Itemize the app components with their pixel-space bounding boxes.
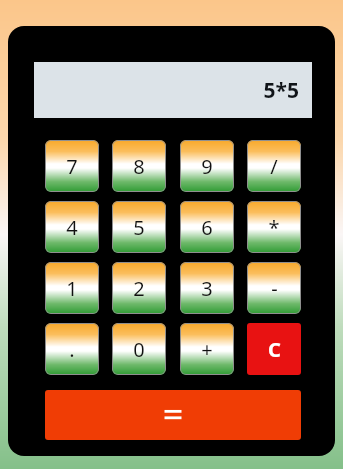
- staticText: 2: [133, 275, 145, 302]
- staticText: 9: [201, 153, 213, 180]
- button[interactable]: 3: [180, 262, 234, 314]
- button[interactable]: 8: [112, 140, 166, 192]
- button[interactable]: +: [180, 323, 234, 375]
- button[interactable]: *: [247, 201, 301, 253]
- staticText: 5: [133, 214, 145, 241]
- staticText: -: [271, 275, 278, 302]
- staticText: 8: [133, 153, 145, 180]
- button[interactable]: 4: [45, 201, 99, 253]
- button[interactable]: 2: [112, 262, 166, 314]
- staticText: 3: [201, 275, 213, 302]
- staticText: 4: [66, 214, 78, 241]
- staticText: 5*5: [263, 76, 299, 105]
- button[interactable]: C: [247, 323, 301, 375]
- button[interactable]: 1: [45, 262, 99, 314]
- button[interactable]: -: [247, 262, 301, 314]
- staticText: 0: [133, 336, 145, 363]
- button[interactable]: /: [247, 140, 301, 192]
- button[interactable]: 5: [112, 201, 166, 253]
- staticText: +: [201, 336, 213, 363]
- staticText: *: [268, 214, 280, 241]
- button[interactable]: 7: [45, 140, 99, 192]
- staticText: /: [270, 153, 278, 180]
- staticText: 6: [201, 214, 213, 241]
- button[interactable]: 0: [112, 323, 166, 375]
- button[interactable]: [45, 390, 301, 440]
- button[interactable]: 6: [180, 201, 234, 253]
- staticText: 7: [66, 153, 78, 180]
- staticText: 1: [66, 275, 78, 302]
- staticText: C: [268, 336, 281, 363]
- button[interactable]: 9: [180, 140, 234, 192]
- staticText: .: [69, 336, 75, 363]
- button[interactable]: .: [45, 323, 99, 375]
